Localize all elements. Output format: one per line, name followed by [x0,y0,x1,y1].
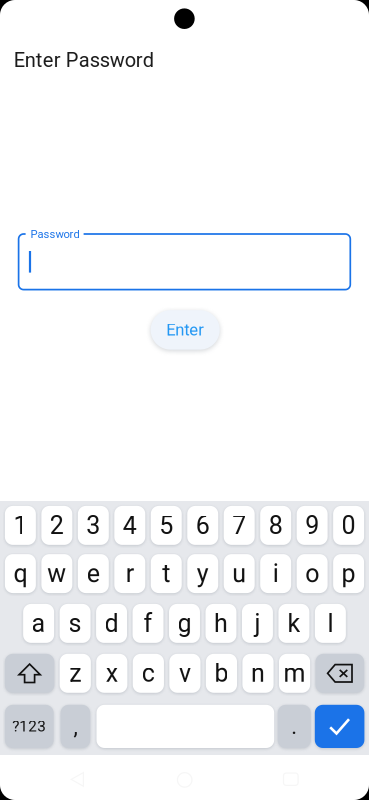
staticText: o [305,559,319,588]
button[interactable]: k [278,604,309,643]
staticText: 3 [86,511,100,540]
staticText: q [13,559,27,588]
button[interactable]: h [205,604,236,643]
button[interactable]: b [206,654,237,693]
staticText: ?123 [12,717,46,735]
staticText: Password [30,228,79,241]
staticText: Enter [166,320,204,340]
button[interactable]: Enter [151,310,220,350]
button[interactable]: w [41,554,72,593]
button[interactable]: 2 [41,506,72,545]
staticText: w [47,559,66,588]
staticText: d [105,609,119,638]
button[interactable]: Return [315,705,364,748]
staticText: p [342,559,356,588]
button[interactable]: a [23,604,54,643]
staticText: n [251,659,265,688]
staticText: Enter Password [14,48,154,72]
button[interactable]: 4 [114,506,145,545]
staticText: l [327,609,333,638]
button[interactable]: ?123 [5,705,54,748]
button[interactable]: j [242,604,273,643]
staticText: 0 [342,511,356,540]
staticText: k [287,609,300,638]
staticText: 8 [269,511,283,540]
staticText: 7 [232,511,246,540]
button[interactable]: r [114,554,145,593]
button[interactable]: m [279,654,310,693]
staticText: t [162,559,170,588]
button[interactable] [96,705,274,748]
staticText: c [142,659,155,688]
button[interactable]: 8 [260,506,291,545]
button[interactable]: p [333,554,364,593]
button[interactable]: u [224,554,255,593]
staticText: 2 [50,511,64,540]
staticText: 9 [305,511,319,540]
staticText: 5 [159,511,173,540]
staticText: 4 [123,511,137,540]
button[interactable]: i [260,554,291,593]
button[interactable]: g [169,604,200,643]
staticText: s [69,609,82,638]
staticText: a [32,609,46,638]
staticText: m [284,659,306,688]
button[interactable]: f [132,604,163,643]
staticText: b [214,659,228,688]
staticText: 6 [196,511,210,540]
button[interactable]: q [5,554,36,593]
staticText: r [126,559,134,588]
button[interactable]: Delete [315,654,364,693]
button[interactable]: v [169,654,200,693]
button[interactable]: 5 [151,506,182,545]
staticText: h [214,609,228,638]
staticText: g [177,609,191,638]
button[interactable]: t [151,554,182,593]
button[interactable]: , [61,705,90,748]
button[interactable]: z [60,654,91,693]
button[interactable]: x [96,654,127,693]
button[interactable]: 3 [78,506,109,545]
staticText: z [69,659,81,688]
button[interactable]: e [78,554,109,593]
button[interactable]: 6 [187,506,218,545]
button[interactable]: y [187,554,218,593]
button[interactable]: Shift [5,654,54,693]
button[interactable]: c [133,654,164,693]
button[interactable]: l [315,604,346,643]
button[interactable]: d [96,604,127,643]
staticText: j [254,609,260,638]
staticText: i [273,559,279,588]
staticText: v [179,659,191,688]
button[interactable]: n [242,654,274,693]
button[interactable]: o [297,554,328,593]
button[interactable]: 0 [333,506,364,545]
staticText: y [197,559,209,588]
button[interactable]: 1 [5,506,36,545]
button[interactable]: . [278,705,311,748]
staticText: 1 [13,511,27,540]
button[interactable]: 9 [297,506,328,545]
staticText: e [87,559,100,588]
staticText: , [73,713,77,739]
staticText: u [232,559,246,588]
staticText: . [291,713,297,739]
staticText: f [143,609,152,638]
button[interactable]: s [60,604,91,643]
staticText: x [106,659,118,688]
button[interactable]: 7 [224,506,255,545]
